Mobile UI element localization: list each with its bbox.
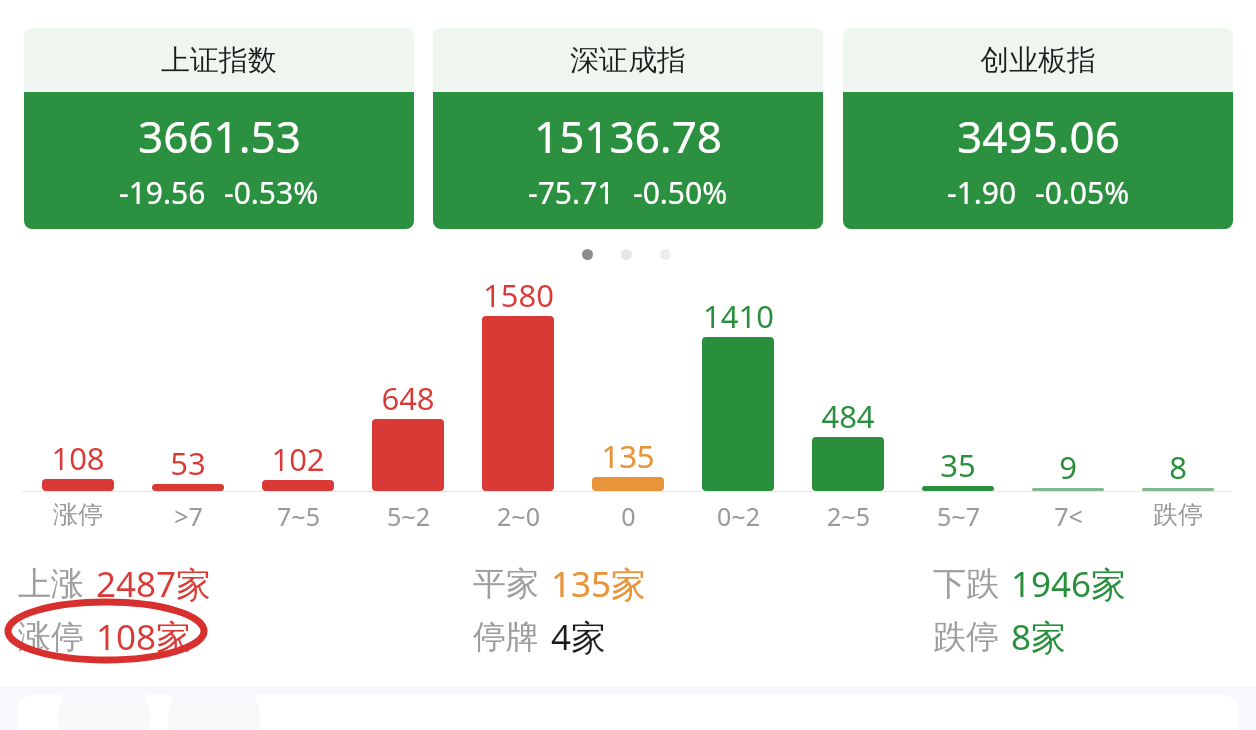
staticText: 7< xyxy=(1054,499,1083,533)
staticText: 跌停 xyxy=(933,616,999,658)
button[interactable]: 停牌 xyxy=(473,613,607,661)
staticText: 下跌 xyxy=(933,563,999,605)
staticText: 1946家 xyxy=(1011,560,1127,608)
staticText: 创业板指 xyxy=(980,42,1096,79)
staticText: 53 xyxy=(170,442,206,484)
staticText: >7 xyxy=(174,499,203,533)
staticText: 35 xyxy=(940,444,976,486)
staticText: -0.50% xyxy=(633,172,728,213)
staticText: 0~2 xyxy=(717,499,760,533)
staticText: 上证指数 xyxy=(161,42,277,79)
staticText: 1410 xyxy=(703,295,774,337)
staticText: -0.05% xyxy=(1035,172,1130,213)
staticText: 4家 xyxy=(551,613,607,661)
staticText: 3661.53 xyxy=(138,106,301,166)
staticText: 9 xyxy=(1059,446,1077,488)
staticText: 5~7 xyxy=(937,499,980,533)
staticText: -1.90 xyxy=(947,172,1017,213)
other: Highlight annotation xyxy=(6,600,206,662)
staticText: 涨停 xyxy=(18,616,84,658)
staticText: 108家 xyxy=(96,613,192,661)
staticText: 8 xyxy=(1169,446,1187,488)
staticText: 3495.06 xyxy=(957,106,1120,166)
staticText: 平家 xyxy=(473,563,539,605)
staticText: 2487家 xyxy=(96,560,212,608)
staticText: 15136.78 xyxy=(534,106,722,166)
staticText: 1580 xyxy=(483,274,554,316)
button[interactable]: 创业板指 xyxy=(843,28,1233,229)
staticText: 102 xyxy=(271,438,325,480)
staticText: 上涨 xyxy=(18,563,84,605)
staticText: 深证成指 xyxy=(570,42,686,79)
staticText: -75.71 xyxy=(528,172,615,213)
staticText: 484 xyxy=(821,395,875,437)
button[interactable]: 下跌 xyxy=(933,560,1127,608)
staticText: -0.53% xyxy=(224,172,319,213)
button[interactable]: 涨停 xyxy=(18,613,192,661)
staticText: 5~2 xyxy=(387,499,430,533)
button[interactable]: 上证指数 xyxy=(24,28,414,229)
staticText: 7~5 xyxy=(277,499,320,533)
staticText: 135家 xyxy=(551,560,647,608)
button[interactable]: 平家 xyxy=(473,560,647,608)
staticText: 2~0 xyxy=(497,499,540,533)
staticText: 涨停 xyxy=(53,499,103,530)
staticText: 跌停 xyxy=(1153,499,1203,530)
staticText: 135 xyxy=(601,435,655,477)
staticText: 648 xyxy=(381,377,435,419)
staticText: 2~5 xyxy=(827,499,870,533)
button[interactable]: 上涨 xyxy=(18,560,212,608)
staticText: 0 xyxy=(621,499,636,533)
staticText: 8家 xyxy=(1011,613,1067,661)
button[interactable]: 深证成指 xyxy=(433,28,823,229)
button[interactable]: 跌停 xyxy=(933,613,1067,661)
staticText: 108 xyxy=(51,437,105,479)
staticText: -19.56 xyxy=(119,172,206,213)
staticText: 停牌 xyxy=(473,616,539,658)
